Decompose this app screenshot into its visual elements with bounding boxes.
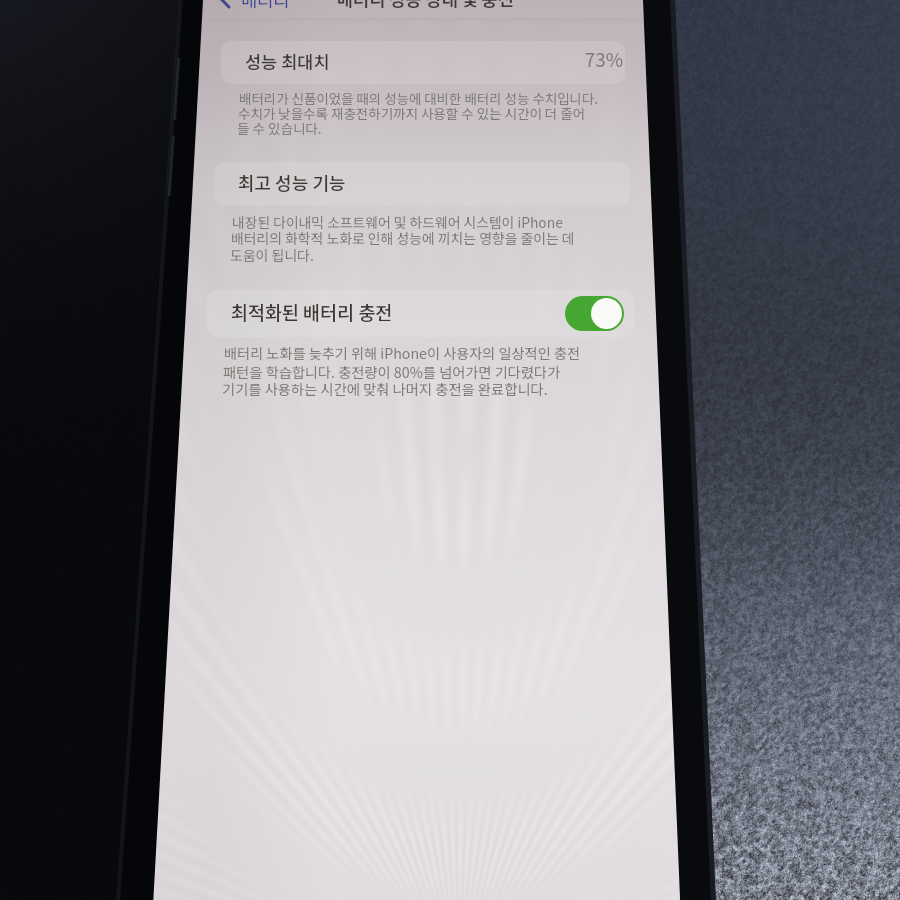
staticText: 73% (483, 45, 623, 900)
staticText: 배터리 성능 상태 및 충전 (337, 0, 514, 11)
button[interactable] (207, 290, 635, 337)
staticText: 패턴을 학습합니다. 충전량이 80%를 넘어가면 기다렸다가 (223, 361, 561, 382)
button[interactable] (214, 162, 630, 205)
staticText: 최고 성능 기능 (238, 169, 346, 195)
staticText: 내장된 다이내믹 소프트웨어 및 하드웨어 시스템이 iPhone (232, 212, 563, 232)
staticText: 배터리 (241, 0, 290, 12)
staticText: 최적화된 배터리 충전 (231, 299, 393, 326)
button[interactable] (221, 41, 625, 84)
staticText: 수치가 낮을수록 재충전하기까지 사용할 수 있는 시간이 더 줄어 (238, 103, 586, 123)
staticText: 배터리의 화학적 노화로 인해 성능에 끼치는 영향을 줄이는 데 (231, 228, 575, 248)
staticText: 기기를 사용하는 시간에 맞춰 나머지 충전을 완료합니다. (222, 378, 548, 399)
staticText: 도움이 됩니다. (230, 245, 314, 265)
button[interactable]: 배터리 (214, 0, 298, 10)
button[interactable]: 최적화된 배터리 충전 켜기 (565, 296, 624, 331)
staticText: 성능 최대치 (245, 49, 330, 74)
staticText: 들 수 있습니다. (237, 118, 322, 138)
staticText: 배터리 노화를 늦추기 위해 iPhone이 사용자의 일상적인 충전 (224, 343, 581, 364)
staticText: 배터리가 신품이었을 때의 성능에 대비한 배터리 성능 수치입니다. (239, 88, 599, 107)
